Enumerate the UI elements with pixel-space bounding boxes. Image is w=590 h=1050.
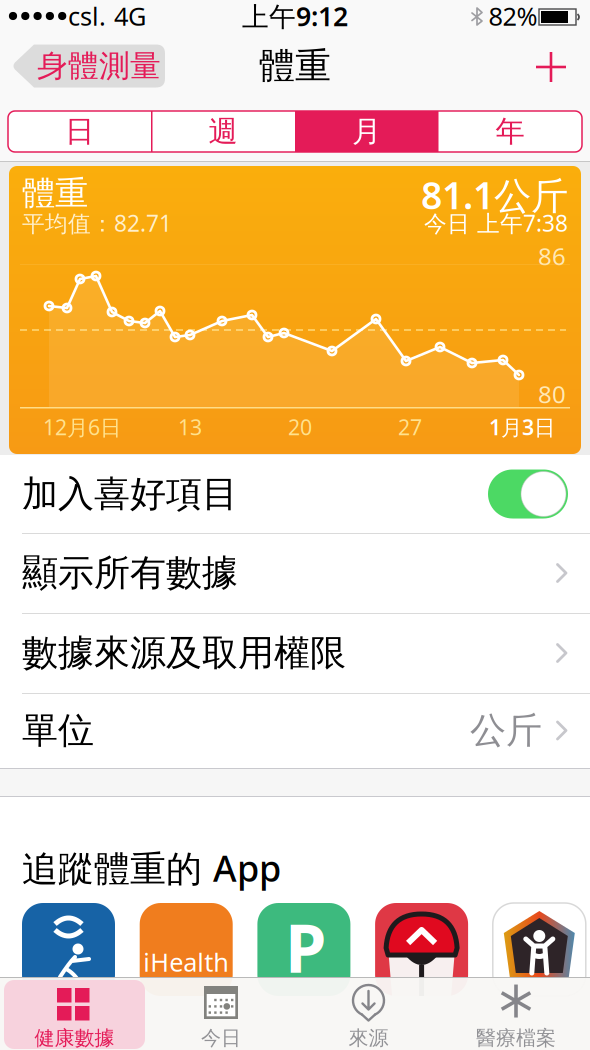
staticText: 月 [352, 113, 381, 149]
staticText: 週 [208, 113, 237, 149]
staticText: 醫療檔案 [476, 1026, 556, 1050]
staticText: P [285, 903, 326, 991]
button[interactable]: 身體測量 [12, 44, 165, 88]
button[interactable]: Pacer [257, 903, 350, 996]
button[interactable]: 顯示所有數據 [0, 533, 590, 613]
staticText: 13 [178, 413, 202, 441]
staticText: 平均值：82.71 [22, 208, 172, 238]
staticText: 4G [114, 0, 146, 33]
staticText: 加入喜好項目 [22, 472, 238, 516]
button[interactable]: 單位 [0, 693, 590, 768]
button[interactable]: 年 [438, 111, 581, 152]
button[interactable]: 數據來源及取用權限 [0, 613, 590, 693]
button[interactable]: 新增 [536, 52, 566, 82]
staticText: 81.1公斤 [421, 170, 568, 220]
staticText: 公斤 [470, 708, 542, 753]
staticText: iHealth [143, 945, 229, 979]
staticText: 單位 [22, 708, 94, 753]
staticText: 追蹤體重的 App [22, 844, 281, 892]
staticText: 86 [538, 240, 566, 272]
staticText: 82% [488, 0, 537, 33]
button[interactable]: Scale app [375, 903, 468, 996]
staticText: 數據來源及取用權限 [22, 631, 346, 675]
button[interactable]: iHealth [140, 903, 233, 996]
button[interactable]: 加入喜好項目 [0, 455, 590, 533]
staticText: 日 [65, 113, 94, 149]
staticText: 體重 [22, 173, 88, 214]
staticText: 80 [538, 378, 566, 410]
button[interactable]: Record [22, 903, 115, 996]
staticText: 20 [288, 413, 312, 441]
staticText: 體重 [259, 44, 331, 88]
staticText: 今日 上午7:38 [424, 208, 568, 238]
button[interactable]: 來源 [298, 980, 439, 1049]
button[interactable]: 今日 [150, 980, 291, 1049]
button[interactable]: 醫療檔案 [445, 980, 586, 1049]
button[interactable]: 健康數據 [4, 980, 145, 1049]
button[interactable]: Argus [493, 903, 586, 996]
staticText: 來源 [348, 1026, 388, 1050]
staticText: csl. [68, 0, 106, 33]
staticText: 顯示所有數據 [22, 551, 238, 595]
staticText: 12月6日 [43, 413, 121, 441]
button[interactable]: 週 [151, 111, 294, 152]
staticText: 今日 [201, 1026, 241, 1050]
button[interactable]: 日 [8, 111, 151, 152]
staticText: 27 [398, 413, 422, 441]
button[interactable]: 月 [295, 111, 438, 152]
staticText: 健康數據 [34, 1026, 114, 1050]
staticText: 年 [495, 113, 524, 149]
staticText: 1月3日 [489, 413, 555, 441]
staticText: 身體測量 [37, 47, 161, 85]
staticText: 上午9:12 [242, 0, 348, 34]
